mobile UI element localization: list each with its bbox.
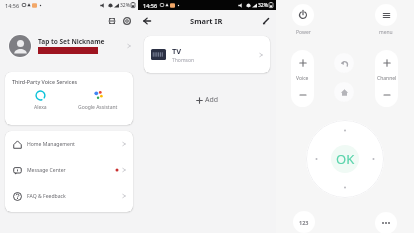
staticText: 123 [299, 219, 309, 226]
staticText: Add [205, 95, 219, 105]
button[interactable]: Power [292, 4, 314, 26]
button[interactable]: Back [334, 53, 354, 73]
button[interactable]: Message Center [5, 157, 133, 183]
button[interactable]: Google Assistant [69, 90, 126, 111]
button[interactable]: Scan [105, 14, 118, 27]
staticText: Power [296, 29, 311, 36]
staticText: 32% [258, 2, 268, 9]
staticText: Smart IR [190, 16, 223, 26]
button[interactable]: Voice up [291, 50, 314, 75]
staticText: Channel [377, 75, 397, 82]
staticText: 32% [120, 2, 130, 9]
staticText: Google Assistant [78, 104, 118, 111]
button[interactable]: TV [144, 36, 270, 73]
staticText: Thomson [172, 57, 195, 64]
button[interactable]: Alexa [12, 90, 69, 111]
button[interactable]: More [375, 212, 397, 233]
button[interactable]: OK [331, 145, 359, 173]
button[interactable]: Home Management [5, 131, 133, 157]
staticText: menu [379, 29, 393, 36]
button[interactable]: 123 [293, 211, 315, 233]
staticText: TV [172, 46, 182, 56]
button[interactable]: Back [140, 14, 154, 28]
staticText: 14:56 [5, 2, 20, 9]
staticText: FAQ & Feedback [27, 193, 66, 200]
button[interactable]: Home [334, 82, 354, 102]
button[interactable]: Voice down [291, 82, 314, 107]
button[interactable]: Tap to Set Nickname [0, 31, 138, 60]
button[interactable]: Channel up [375, 50, 398, 75]
staticText: Message Center [27, 167, 66, 174]
staticText: Tap to Set Nickname [38, 37, 105, 46]
staticText: Alexa [34, 104, 47, 111]
button[interactable]: Channel down [375, 82, 398, 107]
button[interactable]: Menu [375, 4, 397, 26]
button[interactable]: FAQ & Feedback [5, 183, 133, 209]
staticText: Home Management [27, 141, 75, 148]
staticText: Third-Party Voice Services [12, 78, 78, 85]
staticText: OK [336, 150, 355, 168]
button[interactable]: Add [188, 92, 227, 108]
staticText: Voice [296, 75, 309, 82]
button[interactable]: Edit [259, 14, 273, 28]
staticText: 14:56 [143, 2, 158, 9]
button[interactable]: Settings [120, 14, 133, 27]
